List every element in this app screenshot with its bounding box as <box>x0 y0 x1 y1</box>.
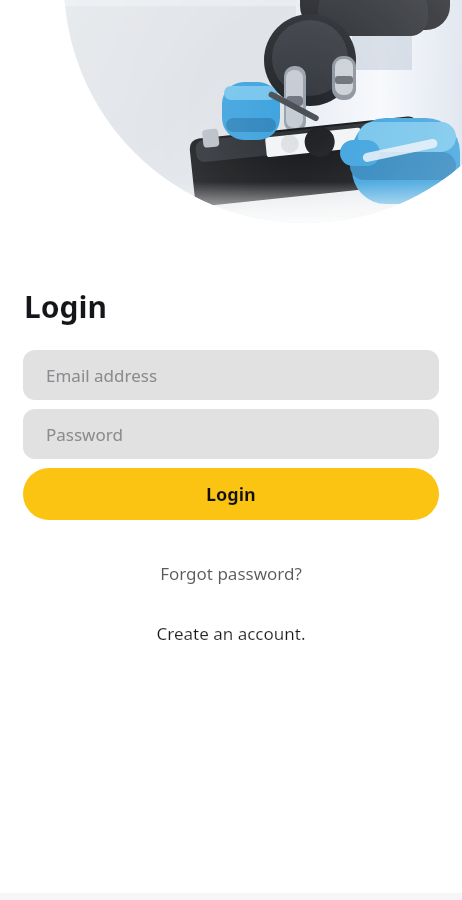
staticText: Create an account. <box>156 622 306 645</box>
staticText: Login <box>206 482 256 507</box>
button[interactable]: Create an account. <box>0 614 462 653</box>
button[interactable]: Email address <box>23 350 439 400</box>
button[interactable]: Forgot password? <box>0 554 462 593</box>
staticText: Email address <box>46 364 158 387</box>
button[interactable]: Password <box>23 409 439 459</box>
staticText: Login <box>24 286 107 327</box>
staticText: Forgot password? <box>160 562 302 585</box>
button[interactable]: Login <box>23 468 439 520</box>
staticText: Password <box>46 423 123 446</box>
